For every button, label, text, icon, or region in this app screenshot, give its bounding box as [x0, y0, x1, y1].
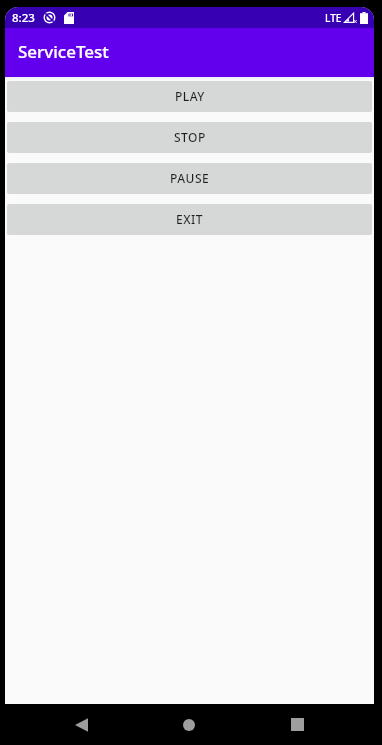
- button[interactable]: EXIT: [7, 204, 372, 235]
- button[interactable]: STOP: [7, 122, 372, 153]
- button[interactable]: Back: [27, 704, 135, 745]
- button[interactable]: Recent apps: [243, 704, 351, 745]
- staticText: EXIT: [176, 211, 204, 227]
- staticText: STOP: [174, 129, 206, 145]
- staticText: ServiceTest: [18, 40, 109, 63]
- staticText: LTE: [325, 11, 342, 25]
- staticText: 8:23: [12, 10, 35, 26]
- staticText: PLAY: [175, 88, 205, 104]
- button[interactable]: Home: [135, 704, 243, 745]
- button[interactable]: PAUSE: [7, 163, 372, 194]
- staticText: PAUSE: [170, 170, 210, 186]
- button[interactable]: PLAY: [7, 81, 372, 112]
